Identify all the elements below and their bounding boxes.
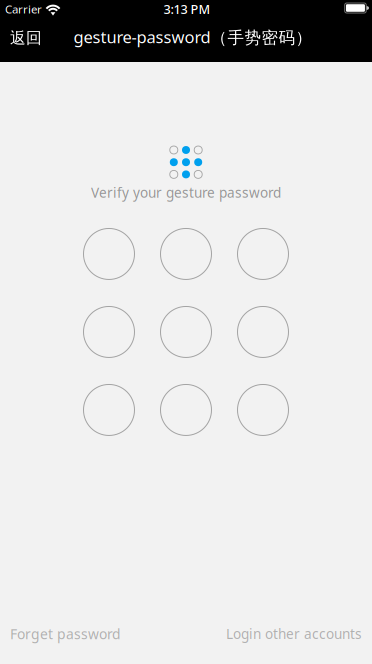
button[interactable]: 返回: [0, 19, 52, 57]
staticText: 返回: [10, 28, 42, 48]
staticText: 3:13 PM: [163, 1, 210, 17]
button[interactable]: Gesture node: [237, 228, 288, 279]
staticText: Carrier: [5, 1, 42, 17]
button[interactable]: Gesture node: [160, 306, 211, 357]
button[interactable]: Gesture node: [83, 306, 134, 357]
button[interactable]: Gesture node: [83, 228, 134, 279]
staticText: Verify your gesture password: [91, 183, 281, 201]
button[interactable]: Gesture node: [237, 306, 288, 357]
staticText: Login other accounts: [226, 625, 362, 643]
staticText: Forget password: [10, 625, 121, 643]
button[interactable]: Gesture node: [237, 384, 288, 435]
button[interactable]: Gesture node: [160, 228, 211, 279]
button[interactable]: Forget password: [10, 619, 121, 649]
staticText: gesture-password（手势密码）: [73, 26, 312, 48]
button[interactable]: Login other accounts: [226, 619, 362, 649]
button[interactable]: Gesture node: [160, 384, 211, 435]
button[interactable]: Gesture node: [83, 384, 134, 435]
